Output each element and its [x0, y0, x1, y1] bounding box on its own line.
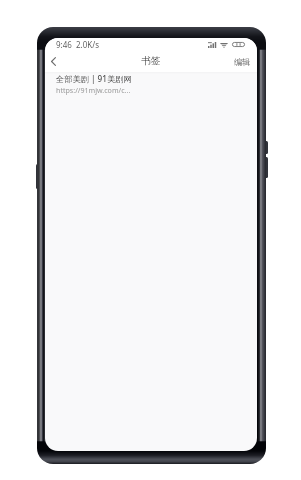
staticText: 书签: [141, 55, 161, 67]
staticText: 2.0K/s: [76, 39, 100, 50]
button[interactable]: 编辑: [234, 57, 257, 67]
button[interactable]: 全部美剧 | 91美剧网: [45, 72, 257, 100]
staticText: https://91mjw.com/c...: [56, 85, 131, 95]
button[interactable]: Back: [45, 52, 61, 71]
staticText: 全部美剧 | 91美剧网: [56, 73, 132, 84]
staticText: 编辑: [234, 57, 251, 67]
staticText: 9:46: [56, 39, 72, 50]
